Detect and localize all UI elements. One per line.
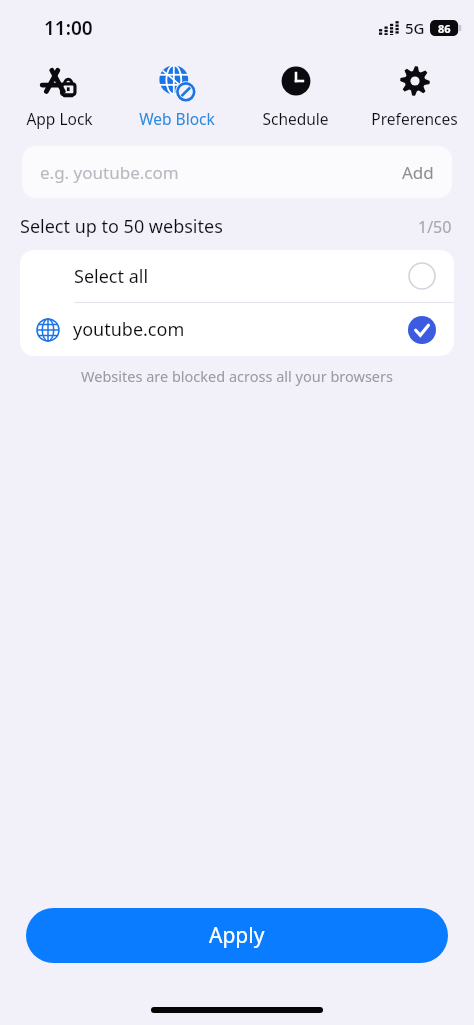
button[interactable]: Select all [20,250,454,302]
staticText: Select all [74,264,408,289]
staticText: 5G [405,18,425,38]
button[interactable]: Web Block [118,56,236,133]
staticText: Apply [209,921,265,950]
staticText: Websites are blocked across all your bro… [0,366,474,386]
staticText: 1/50 [418,216,452,238]
button[interactable]: App Lock [0,56,118,133]
staticText: Schedule [262,108,329,129]
staticText: Web Block [139,108,215,129]
staticText: 11:00 [44,15,93,41]
staticText: App Lock [26,108,93,129]
button[interactable]: e.g. youtube.com [22,146,452,198]
staticText: 86 [438,21,451,36]
button[interactable]: Add [394,161,434,184]
staticText: Preferences [371,108,458,129]
staticText: e.g. youtube.com [40,161,394,184]
button[interactable]: Apply [26,908,448,963]
staticText: Select up to 50 websites [20,214,418,239]
staticText: Add [402,161,434,184]
button[interactable]: youtube.com [20,303,454,356]
button[interactable]: Schedule [236,56,355,133]
staticText: youtube.com [73,317,408,342]
button[interactable]: Preferences [355,56,474,133]
